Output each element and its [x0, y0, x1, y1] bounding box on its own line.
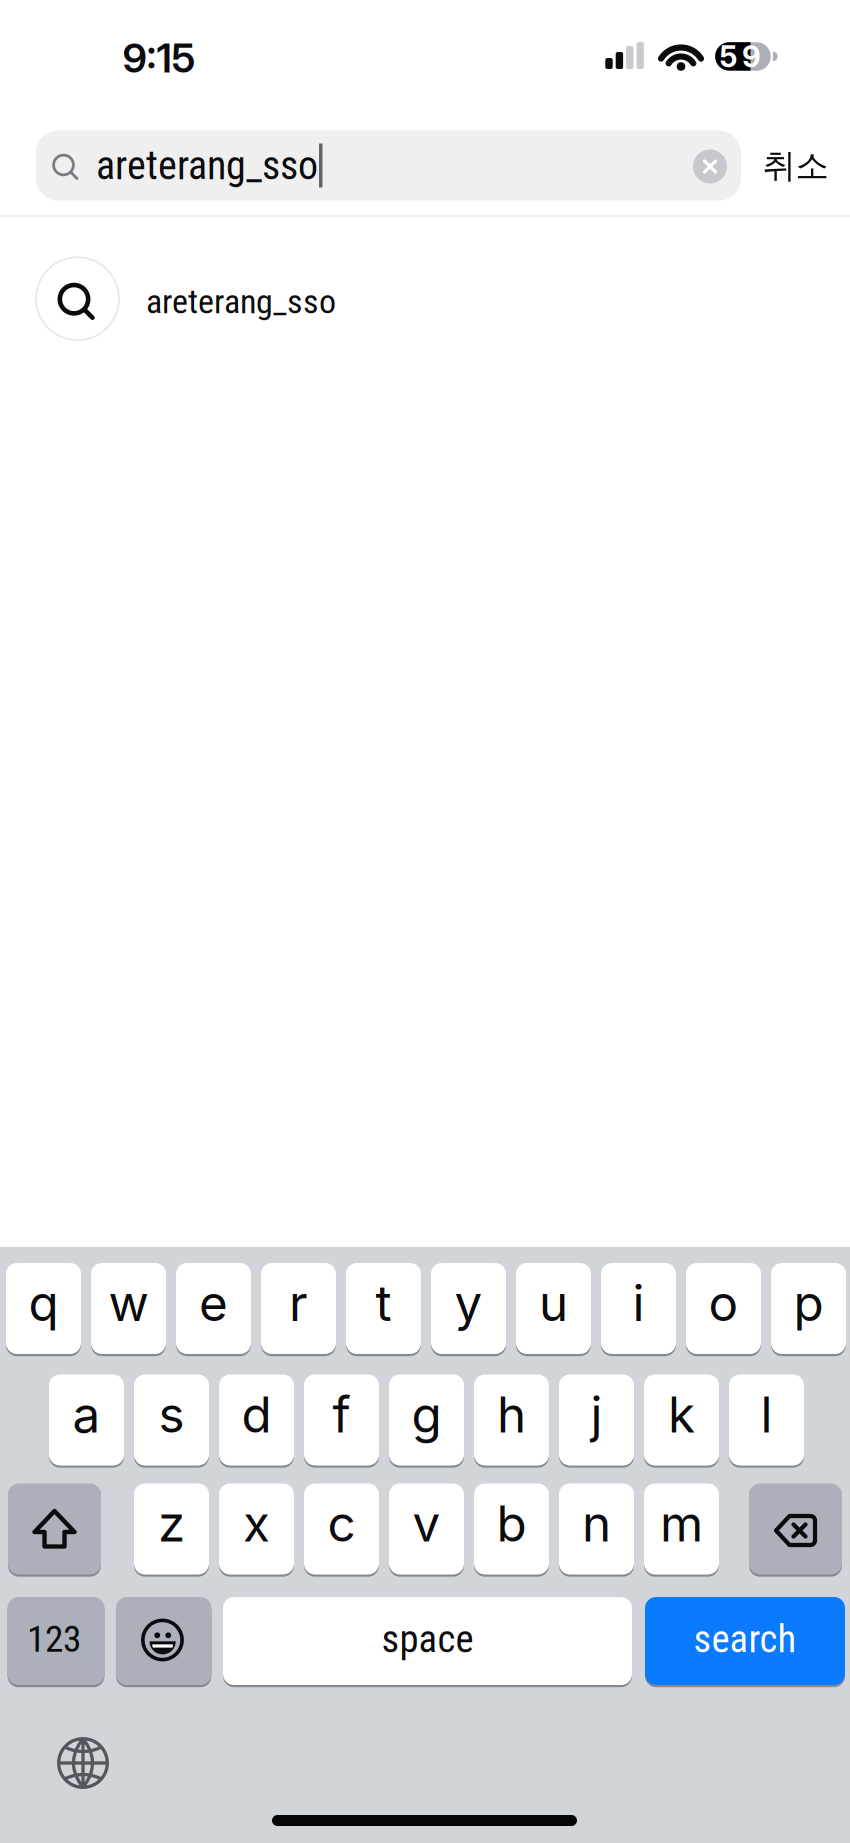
button[interactable]: search: [645, 1597, 845, 1685]
button[interactable]: t: [346, 1263, 421, 1354]
staticText: search: [693, 1616, 796, 1662]
button[interactable]: f: [304, 1374, 379, 1465]
button[interactable]: n: [559, 1483, 634, 1574]
button[interactable]: a: [49, 1374, 124, 1465]
button[interactable]: areterang_sso: [36, 130, 741, 200]
button[interactable]: m: [644, 1483, 719, 1574]
staticText: x: [243, 1494, 270, 1553]
staticText: q: [28, 1273, 58, 1333]
button[interactable]: r: [261, 1263, 336, 1354]
button[interactable]: 123: [7, 1597, 104, 1685]
button[interactable]: j: [559, 1374, 634, 1465]
staticText: l: [760, 1385, 772, 1444]
staticText: k: [668, 1385, 695, 1444]
staticText: 9: [742, 39, 761, 74]
button[interactable]: p: [771, 1263, 846, 1354]
staticText: n: [582, 1494, 611, 1553]
staticText: h: [497, 1385, 526, 1444]
button[interactable]: z: [134, 1483, 209, 1574]
button[interactable]: s: [134, 1374, 209, 1465]
button[interactable]: g: [389, 1374, 464, 1465]
button[interactable]: h: [474, 1374, 549, 1465]
button[interactable]: u: [516, 1263, 591, 1354]
staticText: e: [199, 1273, 228, 1333]
button[interactable]: i: [601, 1263, 676, 1354]
staticText: 취소: [762, 145, 828, 187]
staticText: u: [539, 1273, 568, 1333]
staticText: t: [375, 1273, 391, 1333]
staticText: r: [289, 1273, 308, 1333]
staticText: s: [158, 1385, 184, 1444]
button[interactable]: Next keyboard: [56, 1736, 110, 1790]
button[interactable]: o: [686, 1263, 761, 1354]
staticText: v: [412, 1494, 440, 1553]
staticText: j: [590, 1385, 602, 1444]
staticText: 123: [27, 1617, 81, 1661]
button[interactable]: e: [176, 1263, 251, 1354]
button[interactable]: space: [223, 1597, 632, 1685]
button[interactable]: Clear text: [693, 149, 727, 183]
staticText: c: [327, 1494, 355, 1553]
staticText: f: [332, 1385, 350, 1444]
staticText: w: [108, 1273, 148, 1333]
button[interactable]: k: [644, 1374, 719, 1465]
staticText: a: [72, 1385, 100, 1444]
button[interactable]: v: [389, 1483, 464, 1574]
staticText: 9:15: [122, 34, 195, 82]
button[interactable]: q: [6, 1263, 81, 1354]
staticText: m: [660, 1494, 703, 1553]
button[interactable]: Shift: [8, 1483, 101, 1574]
staticText: o: [708, 1273, 738, 1333]
staticText: 5: [719, 39, 737, 74]
button[interactable]: 취소: [745, 131, 845, 201]
button[interactable]: areterang_sso: [0, 257, 850, 340]
button[interactable]: c: [304, 1483, 379, 1574]
button[interactable]: d: [219, 1374, 294, 1465]
staticText: z: [158, 1494, 185, 1553]
staticText: b: [496, 1494, 526, 1553]
button[interactable]: Delete: [749, 1483, 842, 1574]
button[interactable]: Emoji: [116, 1597, 211, 1685]
button[interactable]: b: [474, 1483, 549, 1574]
staticText: d: [241, 1385, 271, 1444]
staticText: space: [381, 1616, 473, 1662]
staticText: i: [632, 1273, 644, 1333]
button[interactable]: y: [431, 1263, 506, 1354]
staticText: areterang_sso: [96, 142, 318, 189]
staticText: g: [411, 1385, 441, 1444]
button[interactable]: x: [219, 1483, 294, 1574]
button[interactable]: w: [91, 1263, 166, 1354]
staticText: areterang_sso: [146, 282, 336, 322]
button[interactable]: l: [729, 1374, 804, 1465]
staticText: y: [454, 1273, 482, 1333]
staticText: p: [793, 1273, 823, 1333]
